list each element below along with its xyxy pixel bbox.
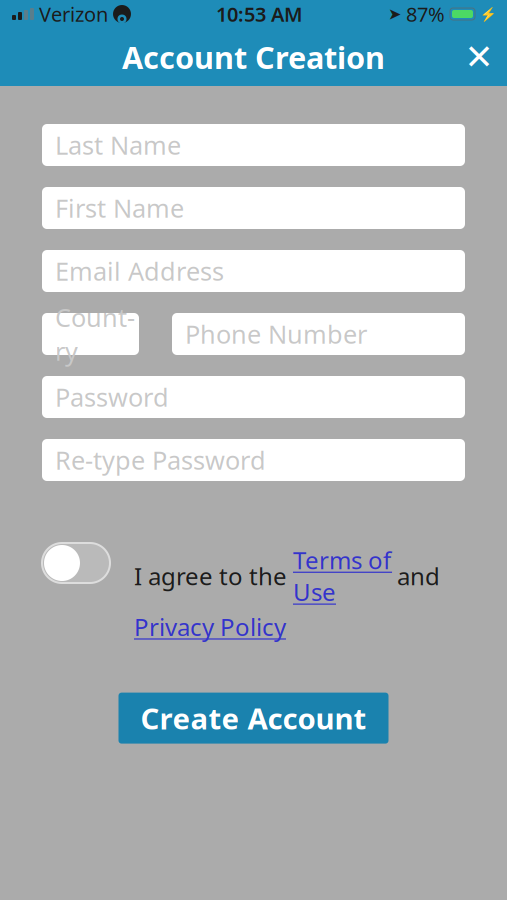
staticText: Password — [55, 380, 169, 414]
button[interactable]: Email Address — [42, 250, 465, 292]
staticText: and — [391, 560, 440, 592]
button[interactable]: Country — [42, 313, 139, 355]
button[interactable]: Last Name — [42, 124, 465, 166]
button[interactable]: Create Account — [118, 693, 388, 744]
staticText: First Name — [55, 191, 184, 225]
staticText: Privacy Policy — [134, 611, 286, 643]
staticText: ➤ — [388, 5, 401, 23]
staticText: Re-type Password — [55, 443, 266, 477]
staticText: Account Creation — [122, 37, 385, 77]
button[interactable]: Close — [451, 28, 507, 86]
staticText: I agree to the — [134, 560, 293, 592]
staticText: 10:53 AM — [216, 1, 303, 27]
staticText: Email Address — [55, 254, 224, 288]
button[interactable]: Re-type Password — [42, 439, 465, 481]
staticText: Phone Number — [185, 317, 367, 351]
staticText: Create Account — [140, 699, 366, 738]
staticText: Last Name — [55, 128, 181, 162]
staticText: Verizon — [39, 1, 108, 27]
staticText: ✕ — [464, 37, 493, 77]
staticText: 87% — [406, 1, 445, 27]
button[interactable]: Agree to terms toggle — [42, 543, 110, 583]
staticText: ⚡ — [480, 6, 497, 22]
button[interactable]: Phone Number — [172, 313, 465, 355]
staticText: Terms of Use — [293, 544, 391, 608]
button[interactable]: First Name — [42, 187, 465, 229]
button[interactable]: Privacy Policy — [134, 611, 286, 643]
button[interactable]: Password — [42, 376, 465, 418]
button[interactable]: Terms of Use — [293, 544, 391, 608]
staticText: Country — [55, 300, 135, 368]
